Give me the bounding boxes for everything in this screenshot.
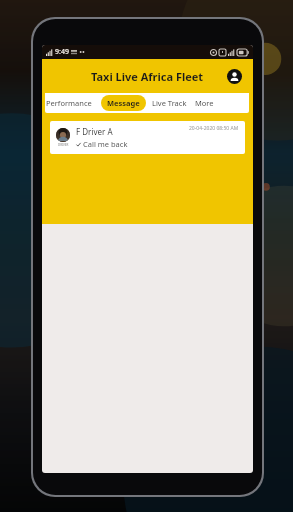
button[interactable]: Live Track xyxy=(150,95,189,111)
staticText: Taxi Live Africa Fleet xyxy=(91,69,204,84)
button[interactable]: DRIVER xyxy=(50,121,245,154)
staticText: F Driver A xyxy=(76,126,113,137)
staticText: 20-04-2020 08:50 AM xyxy=(189,125,239,132)
button[interactable]: More xyxy=(193,95,216,111)
staticText: Message xyxy=(107,98,140,108)
staticText: 9:49 xyxy=(55,47,69,57)
button[interactable]: Profile xyxy=(223,65,245,87)
button[interactable]: Performance xyxy=(45,95,94,111)
staticText: DRIVER xyxy=(58,143,69,147)
staticText: Call me back xyxy=(83,139,128,149)
staticText: Performance xyxy=(46,98,92,108)
staticText: More xyxy=(195,98,214,108)
staticText: Live Track xyxy=(152,98,187,108)
button[interactable]: Message xyxy=(101,95,146,111)
